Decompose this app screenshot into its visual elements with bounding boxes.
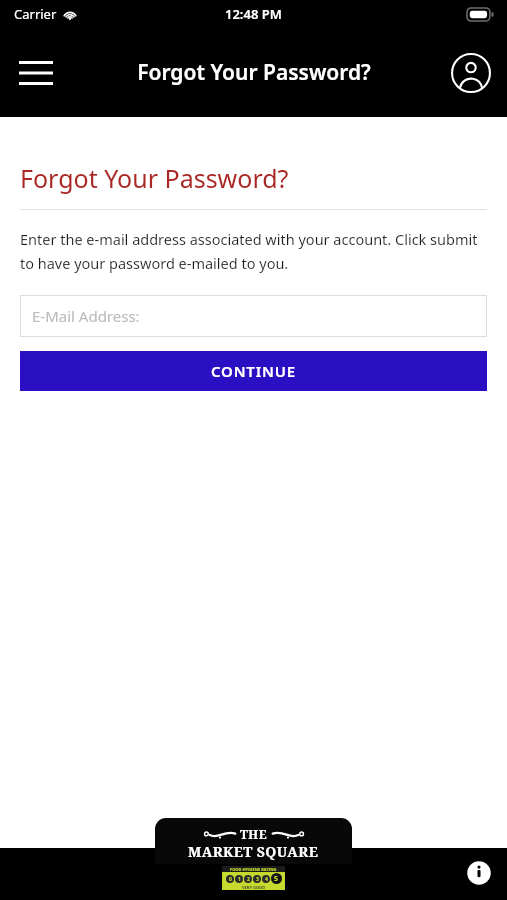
staticText: 2 [247, 876, 250, 883]
staticText: 0 [229, 876, 232, 883]
staticText: Carrier [14, 5, 57, 23]
staticText: Forgot Your Password? [20, 161, 289, 195]
button[interactable]: Information [463, 857, 495, 889]
staticText: CONTINUE [211, 361, 296, 381]
staticText: VERY GOOD [242, 885, 266, 890]
staticText: Forgot Your Password? [137, 58, 371, 87]
button[interactable]: CONTINUE [20, 351, 487, 391]
button[interactable]: Account [445, 47, 497, 99]
staticText: Enter the e-mail address associated with… [20, 229, 487, 273]
staticText: MARKET SQUARE [188, 842, 319, 861]
staticText: 3 [256, 876, 259, 883]
button[interactable]: E-Mail Address: [20, 295, 487, 337]
staticText: FOOD HYGIENE RATING [230, 867, 277, 872]
button[interactable]: The Market Square [155, 818, 352, 864]
staticText: 12:48 PM [225, 5, 282, 23]
staticText: 1 [238, 876, 241, 883]
staticText: E-Mail Address: [32, 306, 140, 326]
button[interactable]: Menu [8, 45, 64, 101]
staticText: THE [240, 826, 268, 842]
staticText: 4 [265, 876, 268, 883]
staticText: 5 [274, 874, 279, 884]
